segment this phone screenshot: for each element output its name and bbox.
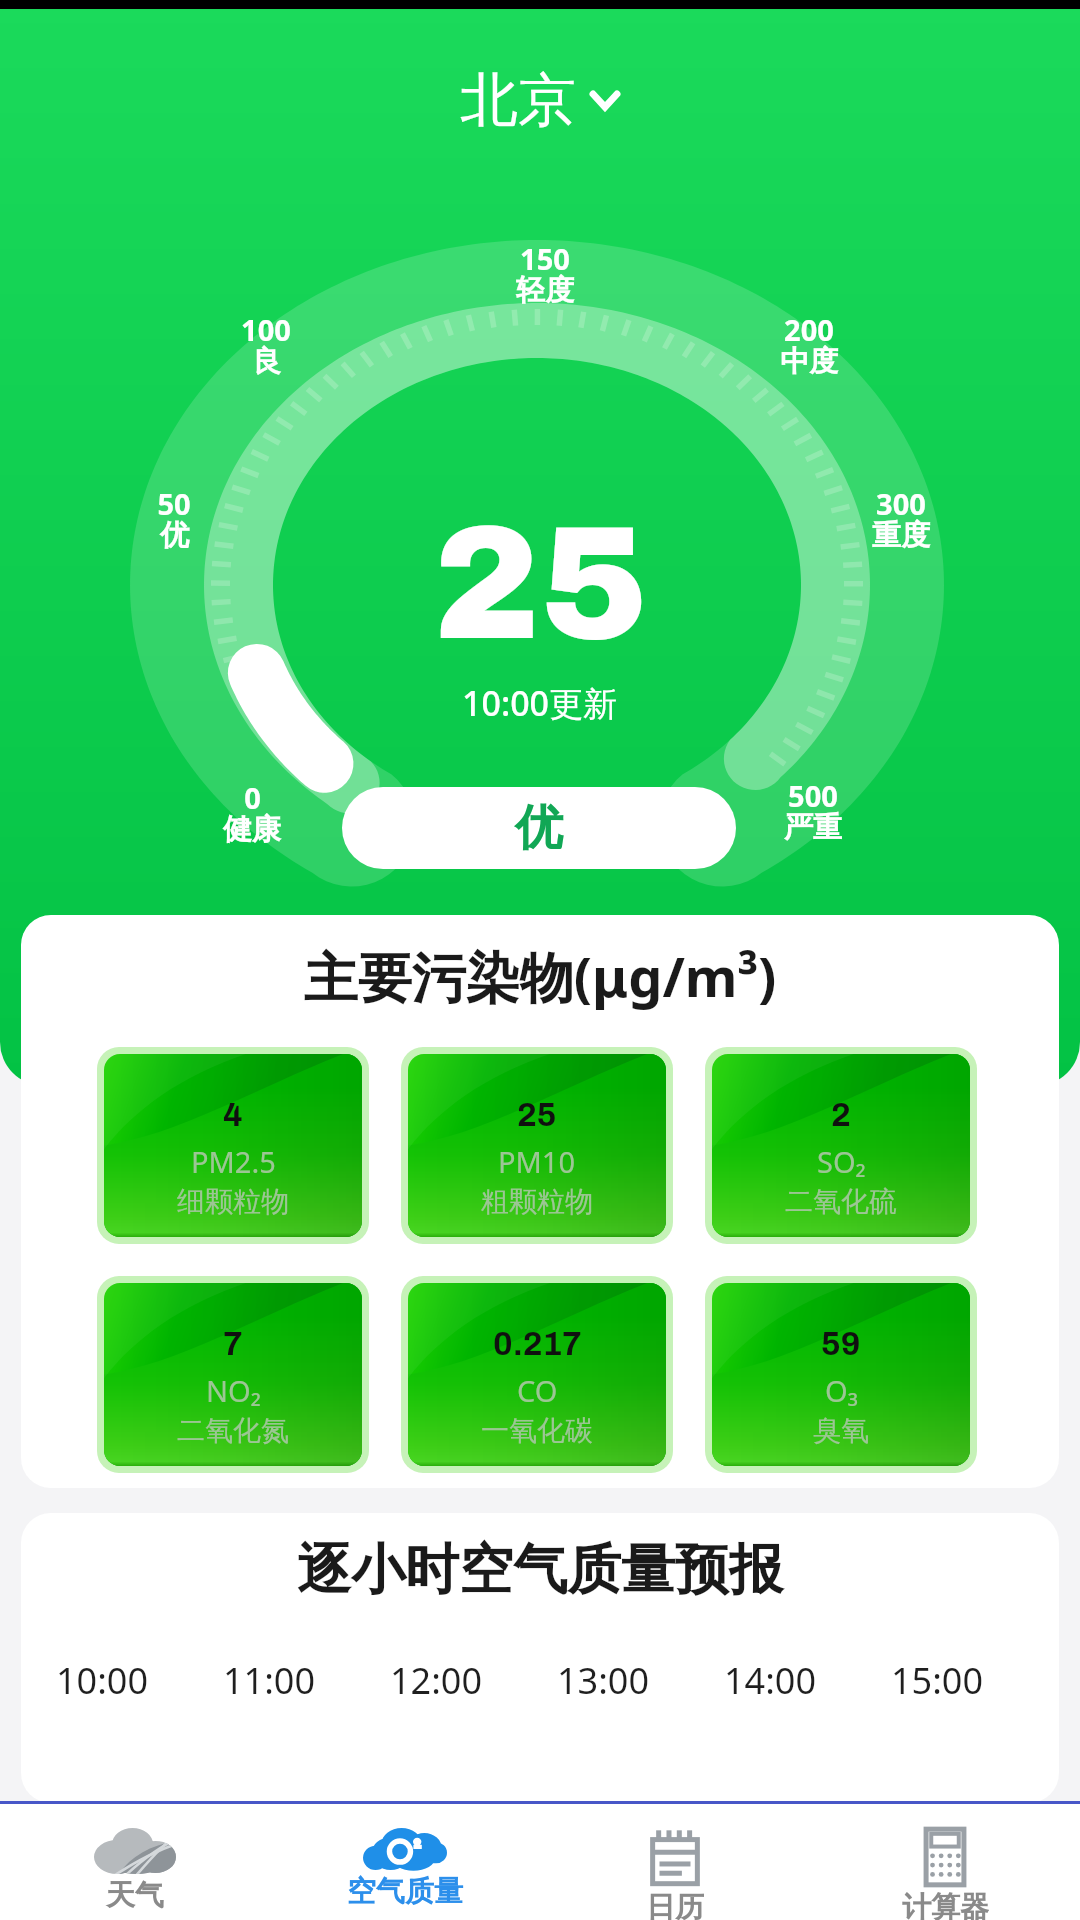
button[interactable]: 空气质量 bbox=[270, 1804, 540, 1920]
button[interactable]: 日历 bbox=[540, 1804, 810, 1920]
button[interactable]: 7 bbox=[104, 1283, 362, 1466]
staticText: 空气质量 bbox=[347, 1873, 463, 1910]
staticText: 7 bbox=[223, 1326, 243, 1362]
staticText: 15:00 bbox=[891, 1656, 984, 1705]
staticText: 13:00 bbox=[557, 1656, 650, 1705]
other: 计算器 bbox=[902, 1828, 988, 1886]
button[interactable]: 优 bbox=[342, 787, 736, 869]
button[interactable]: 59 bbox=[712, 1283, 970, 1466]
staticText: 0 bbox=[244, 778, 261, 817]
staticText: 北京 bbox=[460, 64, 576, 137]
staticText: 良 bbox=[252, 343, 281, 380]
staticText: 优 bbox=[160, 517, 189, 554]
staticText: 健康 bbox=[223, 811, 281, 848]
staticText: NO₂ bbox=[206, 1371, 261, 1410]
other: 天气 bbox=[94, 1828, 176, 1874]
staticText: PM2.5 bbox=[191, 1142, 276, 1181]
staticText: 500 bbox=[788, 776, 838, 815]
staticText: 主要污染物(μg/m³) bbox=[21, 939, 1059, 1013]
staticText: 臭氧 bbox=[813, 1413, 869, 1448]
staticText: SO₂ bbox=[817, 1142, 866, 1181]
staticText: CO bbox=[517, 1371, 558, 1410]
staticText: 严重 bbox=[784, 809, 842, 846]
staticText: 0.217 bbox=[493, 1326, 582, 1362]
staticText: 300 bbox=[876, 484, 926, 523]
button[interactable]: 0.217 bbox=[408, 1283, 666, 1466]
button[interactable]: 4 bbox=[104, 1054, 362, 1237]
staticText: 中度 bbox=[780, 343, 838, 380]
staticText: 计算器 bbox=[902, 1889, 989, 1920]
staticText: 细颗粒物 bbox=[177, 1184, 289, 1219]
staticText: 25 bbox=[517, 1097, 557, 1133]
staticText: 二氧化硫 bbox=[785, 1184, 897, 1219]
staticText: 二氧化氮 bbox=[177, 1413, 289, 1448]
staticText: 12:00 bbox=[390, 1656, 483, 1705]
button[interactable]: 2 bbox=[712, 1054, 970, 1237]
staticText: 25 bbox=[433, 497, 648, 672]
staticText: 59 bbox=[821, 1326, 861, 1362]
staticText: PM10 bbox=[498, 1142, 576, 1181]
staticText: 日历 bbox=[646, 1889, 704, 1920]
staticText: 优 bbox=[515, 798, 563, 858]
other: 空气质量 bbox=[363, 1828, 447, 1870]
staticText: 14:00 bbox=[724, 1656, 817, 1705]
staticText: 粗颗粒物 bbox=[481, 1184, 593, 1219]
button[interactable]: 计算器 bbox=[810, 1804, 1080, 1920]
button[interactable]: 北京 bbox=[446, 54, 634, 147]
staticText: 200 bbox=[784, 310, 834, 349]
staticText: 2 bbox=[831, 1097, 851, 1133]
staticText: 一氧化碳 bbox=[481, 1413, 593, 1448]
staticText: 轻度 bbox=[516, 272, 574, 309]
staticText: 10:00 bbox=[56, 1656, 149, 1705]
staticText: O₃ bbox=[825, 1371, 858, 1410]
staticText: 100 bbox=[241, 310, 291, 349]
staticText: 150 bbox=[520, 239, 570, 278]
staticText: 11:00 bbox=[223, 1656, 316, 1705]
staticText: 逐小时空气质量预报 bbox=[21, 1536, 1059, 1604]
other: 日历 bbox=[632, 1828, 718, 1886]
button[interactable]: 天气 bbox=[0, 1804, 270, 1920]
staticText: 4 bbox=[223, 1097, 243, 1133]
staticText: 重度 bbox=[872, 517, 930, 554]
staticText: 50 bbox=[157, 484, 191, 523]
button[interactable]: 25 bbox=[408, 1054, 666, 1237]
staticText: 天气 bbox=[106, 1877, 164, 1914]
staticText: 10:00更新 bbox=[462, 680, 618, 726]
